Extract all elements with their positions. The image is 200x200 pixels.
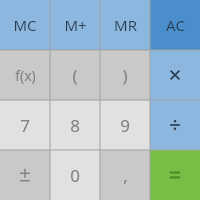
staticText: M+ — [64, 15, 87, 35]
staticText: ( — [72, 64, 78, 87]
button[interactable]: 9 — [100, 100, 150, 150]
button[interactable]: Divide — [150, 100, 200, 150]
staticText: 7 — [20, 114, 30, 137]
staticText: 0 — [70, 164, 80, 187]
button[interactable]: , — [100, 150, 150, 200]
button[interactable]: ) — [100, 50, 150, 100]
button[interactable]: M+ — [50, 0, 100, 50]
button[interactable]: 0 — [50, 150, 100, 200]
button[interactable]: Multiply — [150, 50, 200, 100]
staticText: MR — [114, 15, 137, 35]
button[interactable]: f(x) — [0, 50, 50, 100]
button[interactable]: MR — [100, 0, 150, 50]
button[interactable]: ( — [50, 50, 100, 100]
button[interactable]: Equals — [150, 150, 200, 200]
staticText: f(x) — [15, 66, 36, 85]
staticText: AC — [166, 15, 185, 35]
button[interactable]: MC — [0, 0, 50, 50]
button[interactable]: AC — [150, 0, 200, 50]
staticText: 8 — [70, 114, 80, 137]
staticText: , — [123, 164, 128, 187]
staticText: ) — [122, 64, 128, 87]
button[interactable]: Plus or minus — [0, 150, 50, 200]
button[interactable]: 7 — [0, 100, 50, 150]
staticText: MC — [13, 15, 37, 35]
staticText: 9 — [120, 114, 130, 137]
button[interactable]: 8 — [50, 100, 100, 150]
